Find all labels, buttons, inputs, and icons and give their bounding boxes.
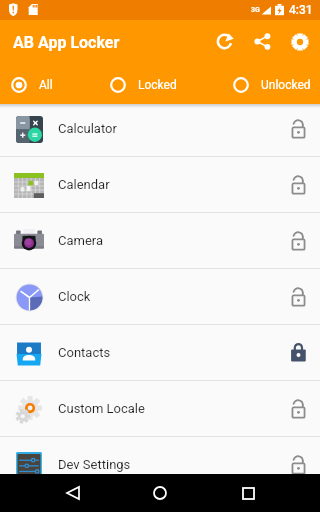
staticText: Unlocked: [261, 78, 311, 92]
button[interactable]: Calendar: [0, 157, 320, 212]
staticText: 4:31: [289, 3, 313, 17]
staticText: Custom Locale: [58, 401, 145, 416]
staticText: Calendar: [58, 177, 110, 192]
button[interactable]: Unlocked: [281, 168, 315, 202]
button[interactable]: Clock: [0, 269, 320, 324]
button[interactable]: Unlocked: [281, 280, 315, 314]
button[interactable]: Locked: [281, 336, 315, 370]
button[interactable]: Recents: [230, 475, 266, 511]
button[interactable]: Calculator: [0, 104, 320, 156]
staticText: 3G: [251, 6, 260, 14]
button[interactable]: Unlocked: [233, 65, 311, 104]
button[interactable]: Unlocked: [281, 448, 315, 474]
staticText: Clock: [58, 289, 91, 304]
button[interactable]: Share: [246, 25, 278, 57]
staticText: Locked: [138, 78, 177, 92]
button[interactable]: Unlocked: [281, 224, 315, 258]
staticText: All: [39, 78, 53, 92]
button[interactable]: Unlocked: [281, 112, 315, 146]
button[interactable]: Dev Settings: [0, 437, 320, 474]
button[interactable]: Locked: [110, 65, 177, 104]
button[interactable]: Unlocked: [281, 392, 315, 426]
staticText: Camera: [58, 233, 104, 248]
button[interactable]: Custom Locale: [0, 381, 320, 436]
button[interactable]: Camera: [0, 213, 320, 268]
button[interactable]: Contacts: [0, 325, 320, 380]
staticText: Dev Settings: [58, 457, 131, 472]
staticText: AB App Locker: [13, 33, 120, 52]
button[interactable]: Refresh: [208, 25, 240, 57]
button[interactable]: All: [11, 65, 53, 104]
staticText: Calculator: [58, 121, 117, 136]
button[interactable]: Back: [55, 475, 91, 511]
button[interactable]: Settings: [284, 26, 316, 58]
staticText: Contacts: [58, 345, 111, 360]
button[interactable]: Home: [142, 475, 178, 511]
